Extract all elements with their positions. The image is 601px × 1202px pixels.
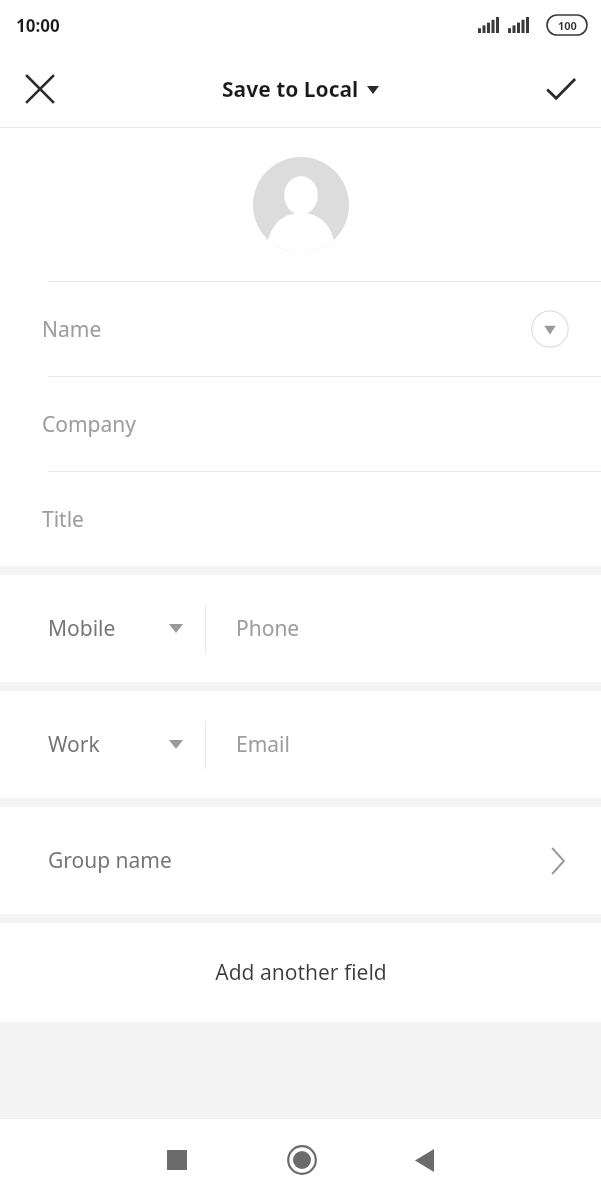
button[interactable]: Name: [0, 282, 601, 376]
button[interactable]: Email: [206, 691, 601, 798]
staticText: 100: [558, 18, 577, 33]
button[interactable]: Group name: [0, 807, 601, 914]
staticText: Email: [236, 730, 290, 759]
button[interactable]: Add photo: [253, 157, 349, 253]
button[interactable]: Add another field: [0, 923, 601, 1022]
staticText: Name: [42, 315, 102, 344]
staticText: Phone: [236, 614, 300, 643]
staticText: 10:00: [16, 14, 60, 37]
button[interactable]: Save: [535, 63, 587, 115]
button[interactable]: Home: [264, 1122, 340, 1198]
button[interactable]: Phone: [206, 575, 601, 682]
button[interactable]: Company: [0, 377, 601, 471]
staticText: Title: [42, 505, 84, 534]
button[interactable]: Save to Local: [214, 69, 387, 110]
staticText: Save to Local: [222, 75, 359, 104]
button[interactable]: Work: [0, 691, 205, 798]
staticText: Mobile: [48, 614, 116, 643]
button[interactable]: Recent apps: [139, 1122, 215, 1198]
button[interactable]: Close: [14, 63, 66, 115]
staticText: Group name: [48, 846, 172, 875]
staticText: Work: [48, 730, 100, 759]
button[interactable]: Mobile: [0, 575, 205, 682]
button[interactable]: Expand name fields: [531, 310, 569, 348]
button[interactable]: Back: [386, 1122, 462, 1198]
staticText: Add another field: [215, 958, 387, 987]
button[interactable]: Title: [0, 472, 601, 566]
staticText: Company: [42, 410, 136, 439]
